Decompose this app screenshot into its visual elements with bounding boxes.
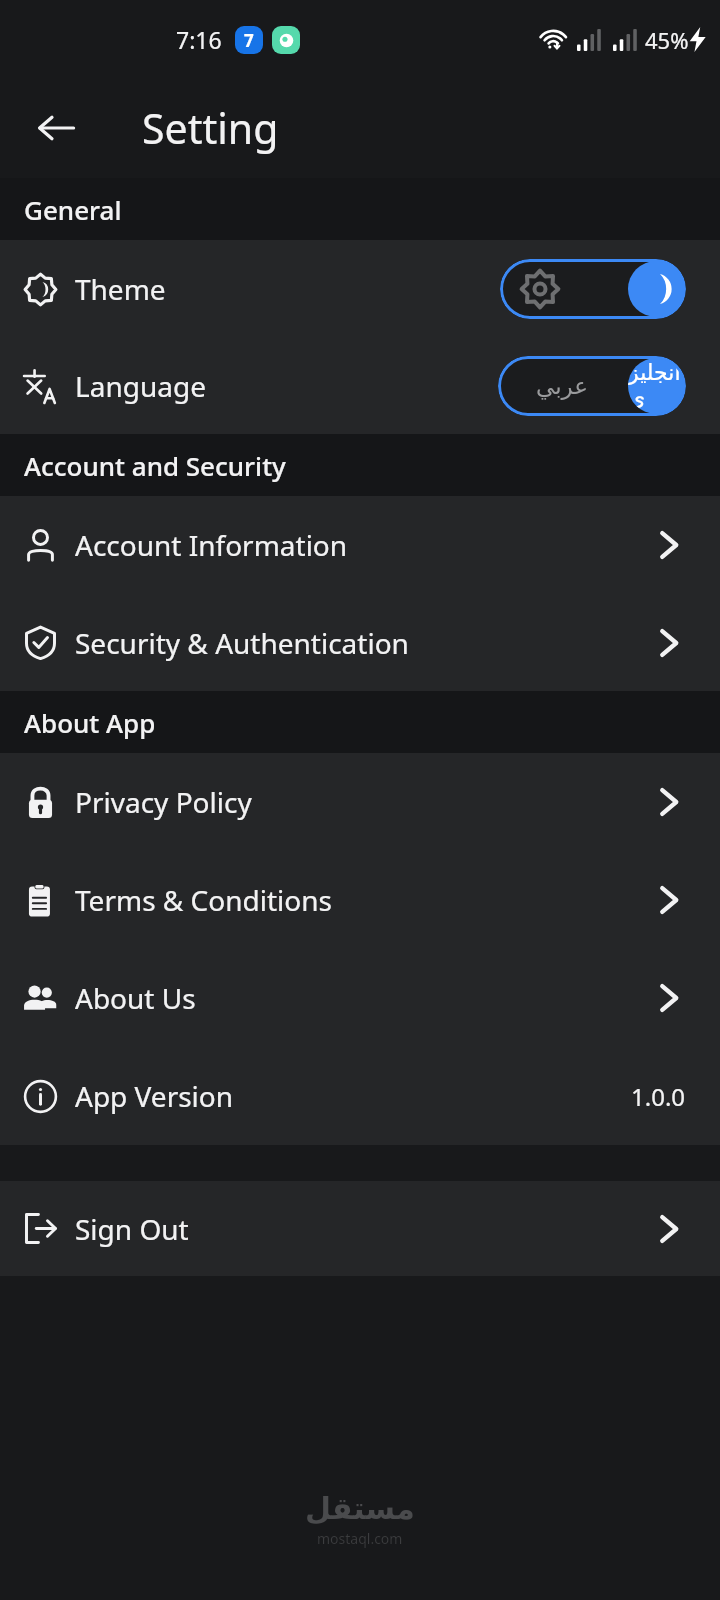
- staticText: Sign Out: [75, 1210, 189, 1248]
- staticText: Setting: [142, 100, 279, 156]
- staticText: Terms & Conditions: [75, 881, 332, 919]
- staticText: 7: [244, 29, 254, 52]
- button[interactable]: Language toggle, English: [498, 356, 686, 416]
- staticText: 7:16: [176, 24, 222, 55]
- staticText: عربي: [536, 373, 588, 400]
- button[interactable]: Theme toggle, dark mode: [500, 259, 686, 319]
- button[interactable]: Privacy Policy: [0, 753, 720, 851]
- staticText: Account and Security: [24, 448, 286, 483]
- button[interactable]: Security & Authentication: [0, 594, 720, 691]
- staticText: About Us: [75, 979, 196, 1017]
- staticText: Privacy Policy: [75, 783, 252, 821]
- staticText: Theme: [75, 270, 166, 308]
- button[interactable]: Terms & Conditions: [0, 851, 720, 949]
- staticText: mostaql.com: [317, 1529, 403, 1548]
- staticText: 45%: [645, 25, 689, 55]
- button[interactable]: Back: [22, 94, 90, 162]
- staticText: Account Information: [75, 526, 348, 564]
- staticText: مستقل: [305, 1491, 415, 1526]
- staticText: Language: [75, 367, 206, 405]
- button[interactable]: About Us: [0, 949, 720, 1047]
- button[interactable]: Sign Out: [0, 1181, 720, 1276]
- staticText: انجليزي: [628, 360, 684, 412]
- staticText: 1.0.0: [631, 1080, 686, 1113]
- button[interactable]: Theme: [0, 240, 720, 338]
- button[interactable]: Language: [0, 338, 720, 434]
- staticText: General: [24, 192, 122, 227]
- staticText: Security & Authentication: [75, 624, 409, 662]
- staticText: About App: [24, 705, 156, 740]
- staticText: App Version: [75, 1077, 234, 1115]
- button[interactable]: Account Information: [0, 496, 720, 594]
